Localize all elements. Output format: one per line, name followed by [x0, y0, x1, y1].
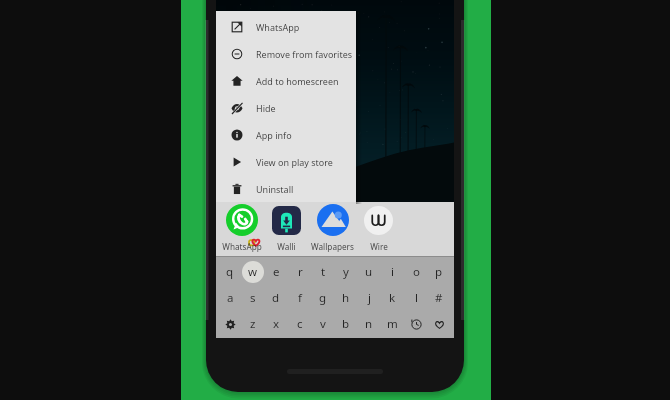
button[interactable]: i	[381, 260, 403, 284]
staticText: c	[297, 316, 303, 332]
staticText: WhatsApp	[256, 21, 300, 33]
button[interactable]: Add to homescreen	[216, 67, 356, 94]
other: Favorites	[434, 319, 445, 330]
staticText: z	[250, 316, 256, 332]
button[interactable]: Favorites	[428, 312, 450, 336]
other: Settings	[225, 319, 236, 330]
staticText: a	[227, 290, 234, 306]
staticText: n	[365, 316, 373, 332]
button[interactable]: Wire	[356, 203, 401, 252]
staticText: Wallpapers	[311, 241, 354, 252]
button[interactable]: e	[265, 260, 287, 284]
staticText: k	[389, 290, 396, 306]
button[interactable]: App info	[216, 121, 356, 148]
staticText: t	[321, 264, 326, 280]
staticText: m	[387, 316, 398, 332]
staticText: d	[272, 290, 280, 306]
button[interactable]: Recent	[405, 312, 427, 336]
button[interactable]: #	[428, 286, 450, 310]
button[interactable]: a	[219, 286, 241, 310]
staticText: Add to homescreen	[256, 75, 339, 87]
staticText: q	[226, 264, 234, 280]
button[interactable]: b	[335, 312, 357, 336]
staticText: g	[319, 290, 327, 306]
staticText: #	[435, 290, 443, 306]
button[interactable]: k	[381, 286, 403, 310]
staticText: i	[391, 264, 394, 280]
staticText: l	[415, 290, 418, 306]
button[interactable]: n	[358, 312, 380, 336]
button[interactable]: z	[242, 312, 264, 336]
button[interactable]: Uninstall	[216, 175, 356, 202]
staticText: View on play store	[256, 156, 333, 168]
button[interactable]: s	[242, 286, 264, 310]
button[interactable]: t	[312, 260, 334, 284]
button[interactable]: p	[428, 260, 450, 284]
staticText: v	[320, 316, 326, 332]
button[interactable]: Settings	[219, 312, 241, 336]
button[interactable]: f	[289, 286, 311, 310]
button[interactable]: WhatsApp	[219, 203, 264, 252]
staticText: Walli	[277, 241, 296, 252]
staticText: b	[342, 316, 350, 332]
button[interactable]: Hide	[216, 94, 356, 121]
button[interactable]: h	[335, 286, 357, 310]
button[interactable]: g	[312, 286, 334, 310]
other: Recent	[411, 319, 422, 330]
button[interactable]: l	[405, 286, 427, 310]
button[interactable]: q	[219, 260, 241, 284]
staticText: Remove from favorites	[256, 48, 353, 60]
button[interactable]: j	[358, 286, 380, 310]
button[interactable]: w	[242, 260, 264, 284]
button[interactable]: d	[265, 286, 287, 310]
button[interactable]: Wallpapers	[310, 203, 355, 252]
button[interactable]: o	[405, 260, 427, 284]
staticText: s	[250, 290, 256, 306]
button[interactable]: y	[335, 260, 357, 284]
staticText: App info	[256, 129, 292, 141]
button[interactable]: m	[381, 312, 403, 336]
staticText: Uninstall	[256, 183, 294, 195]
staticText: e	[273, 264, 280, 280]
staticText: h	[342, 290, 350, 306]
staticText: o	[413, 264, 420, 280]
staticText: j	[368, 290, 371, 306]
button[interactable]: WhatsApp	[216, 13, 356, 40]
staticText: x	[273, 316, 280, 332]
button[interactable]: Remove from favorites	[216, 40, 356, 67]
staticText: p	[435, 264, 443, 280]
button[interactable]: v	[312, 312, 334, 336]
button[interactable]: View on play store	[216, 148, 356, 175]
staticText: Wire	[370, 241, 388, 252]
button[interactable]: c	[289, 312, 311, 336]
staticText: Hide	[256, 102, 276, 114]
button[interactable]: x	[265, 312, 287, 336]
button[interactable]: r	[289, 260, 311, 284]
button[interactable]: Walli	[264, 203, 309, 252]
staticText: WhatsApp	[222, 241, 262, 252]
staticText: r	[298, 264, 303, 280]
staticText: w	[248, 264, 258, 280]
staticText: f	[298, 290, 302, 306]
button[interactable]: u	[358, 260, 380, 284]
staticText: y	[343, 264, 349, 280]
staticText: u	[365, 264, 373, 280]
